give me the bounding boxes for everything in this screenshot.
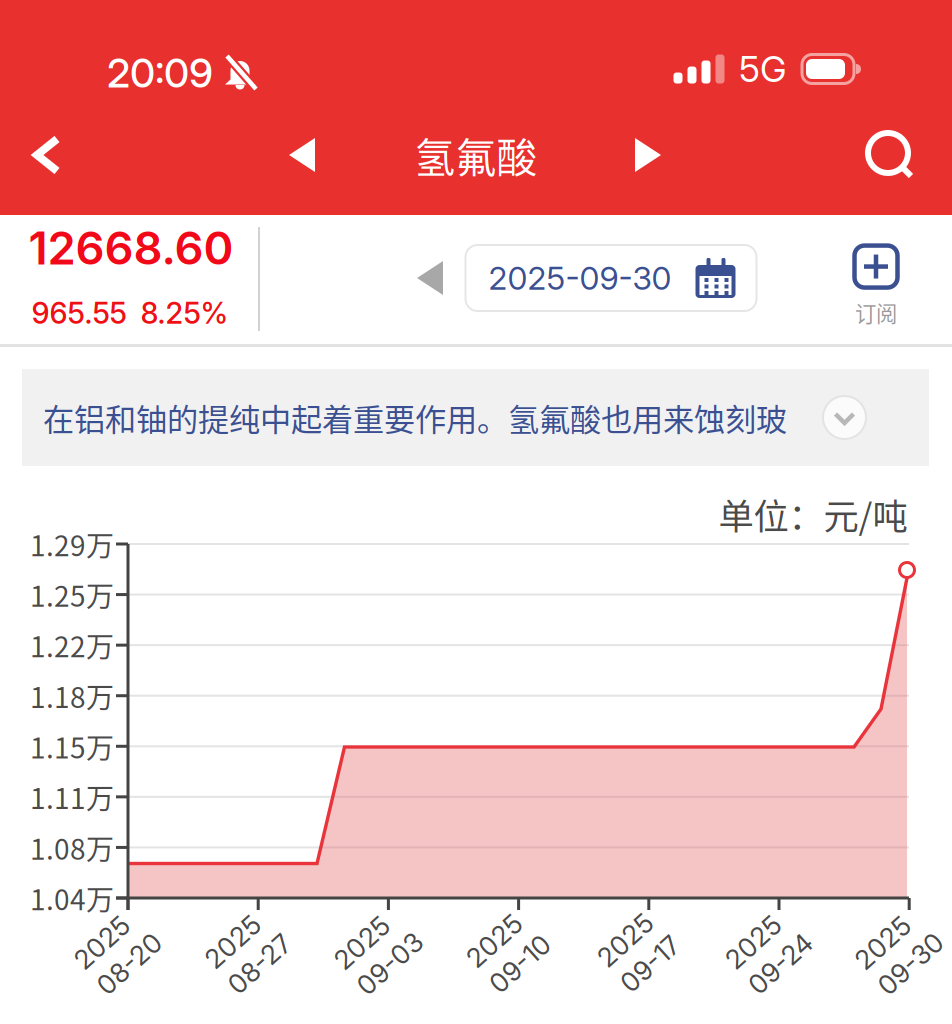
button[interactable]: Previous	[265, 115, 339, 195]
staticText: 1.11万	[30, 777, 114, 817]
staticText: 1.18万	[30, 675, 114, 716]
staticText: 09-30	[860, 952, 938, 984]
button[interactable]: 订阅	[816, 231, 936, 341]
staticText: 965.55 8.25%	[31, 295, 228, 331]
staticText: 1.08万	[30, 827, 114, 868]
staticText: 2025	[604, 918, 669, 950]
staticText: 1.29万	[30, 524, 114, 564]
staticText: 单位：元/吨	[718, 488, 907, 540]
staticText: 09-03	[339, 952, 417, 984]
staticText: 1.22万	[30, 625, 114, 665]
staticText: 2025	[211, 918, 276, 950]
staticText: 2025	[473, 918, 538, 950]
staticText: 2025-09-30	[488, 259, 671, 297]
staticText: 2025	[339, 918, 404, 950]
button[interactable]: Search	[845, 111, 935, 199]
button[interactable]: 在铝和铀的提纯中起着重要作用。氢氟酸也用来蚀刻玻	[22, 369, 929, 466]
staticText: 09-17	[604, 952, 674, 984]
staticText: 在铝和铀的提纯中起着重要作用。氢氟酸也用来蚀刻玻	[43, 395, 787, 440]
staticText: 09-24	[731, 952, 807, 984]
staticText: 1.25万	[30, 574, 114, 615]
staticText: 2025	[79, 918, 144, 950]
button[interactable]: Back	[3, 111, 91, 199]
staticText: 氢氟酸	[414, 126, 537, 184]
button[interactable]: Next	[611, 115, 685, 195]
staticText: 1.15万	[30, 726, 114, 766]
staticText: 12668.60	[28, 221, 233, 275]
button[interactable]: 2025-09-30	[465, 245, 756, 311]
staticText: 20:09	[107, 49, 213, 97]
staticText: 2025	[731, 918, 796, 950]
staticText: 08-20	[79, 952, 156, 984]
staticText: 09-10	[473, 952, 545, 984]
staticText: 订阅	[855, 297, 897, 328]
staticText: 08-27	[211, 952, 286, 984]
staticText: 5G	[739, 47, 786, 91]
staticText: 2025	[860, 918, 925, 950]
staticText: 1.04万	[30, 878, 114, 918]
